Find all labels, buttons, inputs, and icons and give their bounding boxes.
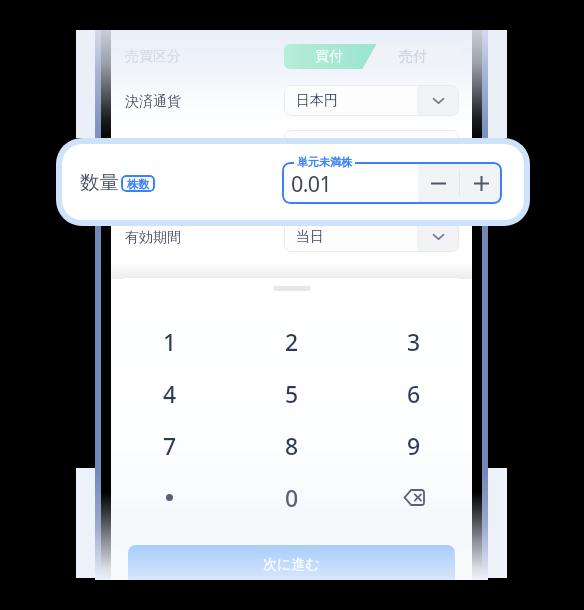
button[interactable]: 数量 xyxy=(62,144,524,220)
button[interactable]: 0 xyxy=(231,471,353,523)
button[interactable]: 5 xyxy=(231,367,353,419)
staticText: 日本円 xyxy=(296,92,338,110)
staticText: 4 xyxy=(163,378,177,409)
staticText: 次に進む xyxy=(263,556,320,574)
button[interactable]: 次に進む xyxy=(128,545,455,580)
staticText: 9 xyxy=(407,430,421,461)
button[interactable]: 株数 xyxy=(121,175,155,192)
button[interactable]: Backspace xyxy=(353,471,472,523)
button[interactable]: Increase quantity xyxy=(460,162,502,204)
button[interactable] xyxy=(284,130,459,161)
staticText: 買付 xyxy=(315,48,343,66)
button[interactable]: 6 xyxy=(353,367,472,419)
staticText: 2 xyxy=(285,326,299,357)
button[interactable]: 2 xyxy=(231,315,353,367)
staticText: 有効期間 xyxy=(125,229,181,247)
button[interactable]: 8 xyxy=(231,419,353,471)
staticText: 単元未満株 xyxy=(297,155,352,169)
button[interactable]: 当日 xyxy=(284,221,459,252)
staticText: 売付 xyxy=(399,48,427,66)
staticText: 株数 xyxy=(127,177,149,191)
button[interactable]: 7 xyxy=(111,419,231,471)
staticText: 0.01 xyxy=(291,169,332,198)
staticText: 7 xyxy=(163,430,177,461)
button[interactable]: 3 xyxy=(353,315,472,367)
staticText: 決済通貨 xyxy=(125,93,181,111)
staticText: 8 xyxy=(285,430,299,461)
button[interactable]: 買付 xyxy=(284,44,462,69)
staticText: 売買区分 xyxy=(125,48,181,66)
staticText: 5 xyxy=(285,378,299,409)
staticText: 6 xyxy=(407,378,421,409)
staticText: 当日 xyxy=(296,228,324,246)
button[interactable]: 1 xyxy=(111,315,231,367)
button[interactable]: 4 xyxy=(111,367,231,419)
staticText: 1 xyxy=(163,326,177,357)
button[interactable]: 9 xyxy=(353,419,472,471)
staticText: 0 xyxy=(285,482,299,513)
button[interactable]: Decrease quantity xyxy=(418,162,459,204)
button[interactable]: 日本円 xyxy=(284,85,459,116)
staticText: 数量 xyxy=(80,170,119,195)
button[interactable] xyxy=(111,471,231,523)
staticText: 3 xyxy=(407,326,421,357)
